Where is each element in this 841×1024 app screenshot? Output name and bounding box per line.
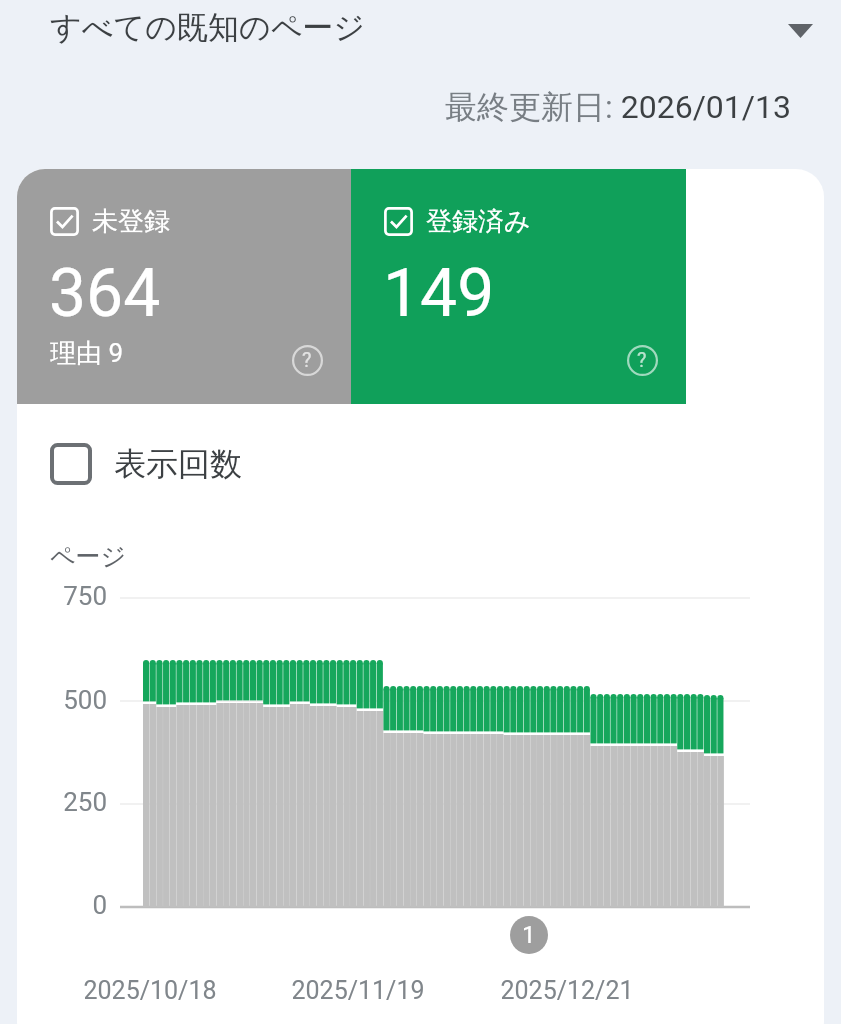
- staticText: 1: [522, 921, 536, 949]
- button[interactable]: すべての既知のページ: [0, 0, 841, 62]
- staticText: 2025/12/21: [487, 976, 647, 1005]
- staticText: 未登録: [92, 205, 170, 238]
- staticText: すべての既知のページ: [50, 8, 366, 47]
- staticText: 250: [27, 787, 107, 817]
- staticText: ページ: [50, 541, 127, 572]
- staticText: 2025/11/19: [278, 976, 438, 1005]
- button[interactable]: Expand list: [772, 3, 828, 59]
- button[interactable]: 表示回数: [17, 404, 824, 524]
- staticText: 登録済み: [426, 205, 531, 238]
- staticText: 149: [383, 255, 495, 332]
- button[interactable]: Help: [289, 342, 325, 378]
- button[interactable]: 1: [510, 916, 548, 954]
- staticText: 理由 9: [50, 337, 124, 370]
- staticText: 2025/10/18: [70, 976, 230, 1005]
- staticText: 500: [27, 685, 107, 715]
- staticText: 364: [49, 255, 161, 332]
- button[interactable]: Help: [624, 342, 660, 378]
- staticText: 0: [27, 890, 107, 920]
- staticText: 表示回数: [114, 444, 242, 484]
- staticText: ?: [302, 348, 312, 371]
- staticText: 最終更新日: 2026/01/13: [445, 87, 791, 127]
- staticText: 750: [27, 581, 107, 611]
- staticText: ?: [637, 348, 647, 371]
- button[interactable]: 登録済み: [351, 169, 686, 404]
- button[interactable]: 未登録: [17, 169, 351, 404]
